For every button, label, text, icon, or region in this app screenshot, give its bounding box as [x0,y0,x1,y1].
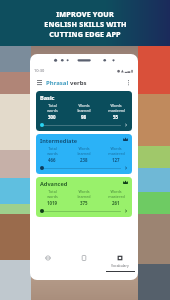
button[interactable]: Basic [36,91,132,131]
staticText: Total [48,189,57,194]
button[interactable]: Vocabulary [102,254,138,280]
staticText: 375 [80,200,88,206]
button[interactable]: More options [123,77,134,88]
staticText: ● ▲ ▂▃ ▮ [117,68,134,73]
button[interactable]: Advanced [36,177,132,217]
staticText: words [47,151,58,156]
staticText: CUTTING EDGE APP [49,29,121,39]
staticText: Words [78,146,90,151]
button[interactable]: Open navigation menu [34,77,45,88]
staticText: Words [78,103,90,108]
staticText: learned [77,194,91,199]
staticText: mastered [108,151,125,156]
staticText: words [47,194,58,199]
staticText: 55 [113,114,119,120]
button[interactable]: Grammar [30,254,66,280]
staticText: ENGLISH SKILLS WITH [44,19,127,29]
staticText: 1019 [47,200,58,206]
staticText: Words [78,189,90,194]
staticText: Words [110,103,122,108]
staticText: IMPROVE YOUR [56,9,114,19]
staticText: Vocabulary [111,263,129,268]
staticText: 98 [81,114,87,120]
staticText: mastered [108,194,125,199]
staticText: 300 [48,114,56,120]
staticText: 238 [80,157,88,163]
staticText: Intermediate [40,137,78,145]
staticText: Advanced [40,180,68,188]
staticText: 127 [112,157,120,163]
staticText: words [47,108,58,113]
staticText: mastered [108,108,125,113]
staticText: Words [110,146,122,151]
staticText: 10:30 [34,68,45,73]
staticText: Total [48,103,57,108]
staticText: verbs [70,79,87,87]
staticText: Words [110,189,122,194]
staticText: learned [77,108,91,113]
button[interactable]: Intermediate [36,134,132,174]
staticText: 261 [112,200,120,206]
staticText: Total [48,146,57,151]
staticText: Basic [40,94,55,102]
staticText: learned [77,151,91,156]
staticText: 466 [48,157,56,163]
button[interactable]: Lessons [66,254,102,280]
staticText: Phrasal [46,79,70,87]
